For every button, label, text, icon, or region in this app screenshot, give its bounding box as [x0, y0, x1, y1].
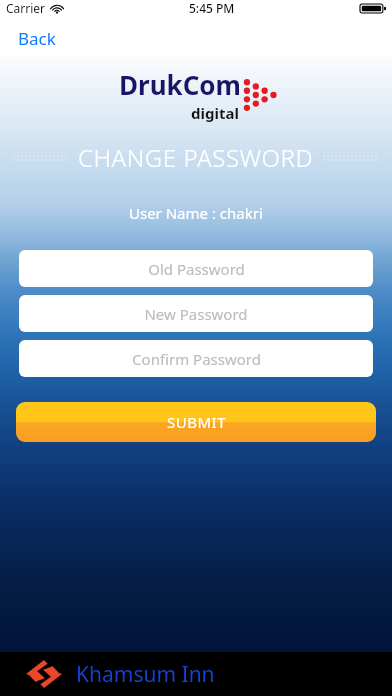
staticText: SUBMIT — [167, 412, 226, 432]
button[interactable]: New Password — [19, 295, 373, 332]
staticText: New Password — [144, 304, 248, 324]
button[interactable]: Confirm Password — [19, 340, 373, 377]
button[interactable]: SUBMIT — [16, 402, 376, 442]
staticText: Confirm Password — [132, 349, 261, 369]
staticText: Back — [18, 27, 56, 50]
staticText: DrukCom — [119, 67, 241, 102]
staticText: User Name : chakri — [129, 203, 263, 223]
button[interactable]: Back — [12, 23, 62, 54]
staticText: Khamsum Inn — [76, 660, 215, 689]
staticText: 5:45 PM — [189, 0, 235, 16]
staticText: digital — [191, 103, 239, 123]
staticText: Old Password — [148, 259, 245, 279]
button[interactable]: Old Password — [19, 250, 373, 287]
staticText: CHANGE PASSWORD — [78, 141, 314, 174]
staticText: Carrier — [6, 0, 46, 16]
